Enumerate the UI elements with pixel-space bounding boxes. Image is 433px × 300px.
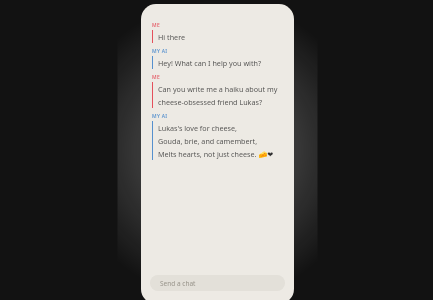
button[interactable]: MY AI — [152, 48, 286, 69]
staticText: Melts hearts, not just cheese. 🧀❤️ — [158, 149, 274, 159]
staticText: Lukas's love for cheese, — [158, 123, 237, 133]
staticText: ME — [152, 22, 160, 29]
staticText: ME — [152, 74, 160, 81]
staticText: MY AI — [152, 113, 168, 120]
button[interactable]: MY AI — [152, 113, 286, 160]
staticText: Gouda, brie, and camembert, — [158, 136, 258, 146]
staticText: Send a chat — [160, 279, 196, 288]
button[interactable]: Send a chat — [150, 275, 285, 291]
staticText: cheese-obsessed friend Lukas? — [158, 97, 263, 107]
button[interactable]: ME — [152, 74, 286, 108]
staticText: Hi there — [158, 32, 186, 42]
staticText: Hey! What can I help you with? — [158, 58, 262, 68]
button[interactable]: ME — [152, 22, 286, 43]
staticText: MY AI — [152, 48, 168, 55]
staticText: Can you write me a haiku about my — [158, 84, 278, 94]
